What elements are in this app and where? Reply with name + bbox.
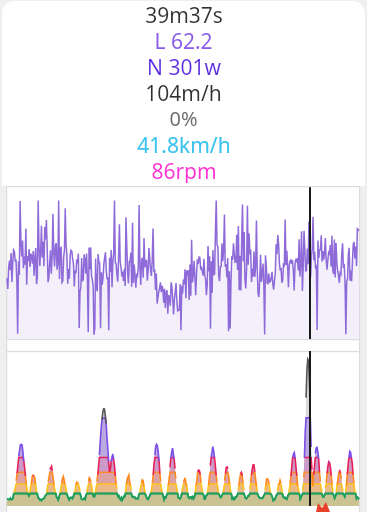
staticText: 86rpm bbox=[151, 157, 217, 183]
staticText: 41.8km/h bbox=[137, 131, 231, 157]
button[interactable]: Power chart bbox=[0, 186, 367, 351]
staticText: L 62.2 bbox=[154, 27, 213, 53]
button[interactable]: Heart rate zone chart bbox=[0, 351, 367, 512]
staticText: 104m/h bbox=[145, 79, 222, 105]
staticText: 39m37s bbox=[145, 1, 223, 27]
staticText: N 301w bbox=[147, 53, 221, 79]
staticText: 0% bbox=[169, 105, 198, 131]
button[interactable]: 39m37s bbox=[2, 1, 365, 186]
